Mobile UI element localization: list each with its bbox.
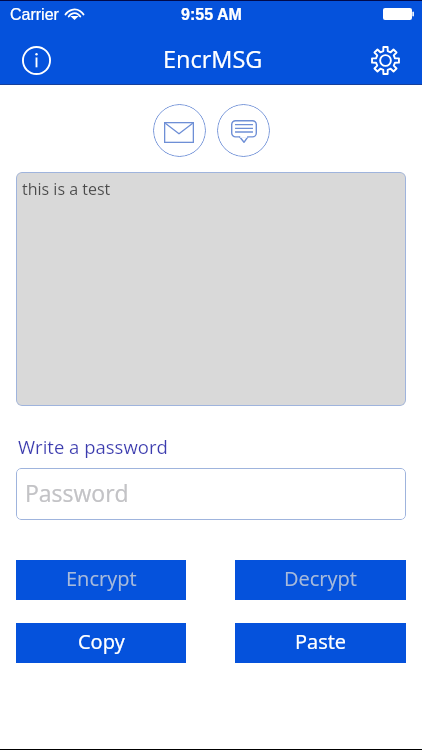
staticText: Encrypt <box>66 565 137 592</box>
staticText: this is a test <box>22 178 111 200</box>
button[interactable]: Decrypt <box>235 560 406 600</box>
staticText: 9:55 AM <box>181 6 242 24</box>
button[interactable]: Encrypt <box>16 560 186 600</box>
button[interactable]: Password <box>16 468 406 520</box>
staticText: Copy <box>78 628 125 655</box>
button[interactable]: Copy <box>16 623 186 663</box>
staticText: Carrier <box>10 6 59 24</box>
button[interactable]: Message <box>217 104 270 157</box>
button[interactable]: Mail <box>153 104 206 157</box>
staticText: EncrMSG <box>163 43 263 75</box>
staticText: Decrypt <box>284 565 357 592</box>
button[interactable]: Info <box>16 40 56 80</box>
button[interactable]: this is a test <box>16 172 406 406</box>
staticText: Password <box>25 477 129 508</box>
staticText: Write a password <box>18 434 168 459</box>
button[interactable]: Paste <box>235 623 406 663</box>
staticText: Paste <box>295 628 347 655</box>
button[interactable]: Settings <box>365 40 405 80</box>
